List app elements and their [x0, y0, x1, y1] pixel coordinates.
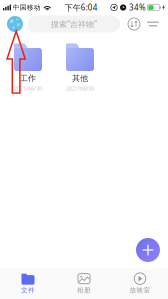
- staticText: 其他: [72, 73, 88, 83]
- staticText: 2021/06/30: [14, 85, 42, 92]
- button[interactable]: 排序: [128, 18, 140, 30]
- staticText: 2021/06/30: [66, 85, 94, 92]
- button[interactable]: 工作: [2, 43, 54, 92]
- staticText: 工作: [20, 73, 36, 83]
- button[interactable]: 放映室: [112, 268, 168, 299]
- staticText: 文件: [21, 286, 35, 294]
- staticText: 搜索“吉祥物”: [51, 19, 97, 29]
- button[interactable]: 文件: [0, 268, 56, 299]
- staticText: 下午6:04: [65, 2, 98, 13]
- staticText: 中国移动: [13, 3, 41, 12]
- button[interactable]: 切换视图: [147, 18, 159, 30]
- staticText: 相册: [77, 286, 91, 294]
- staticText: 34%: [129, 2, 146, 13]
- button[interactable]: 相册: [56, 268, 112, 299]
- button[interactable]: 搜索“吉祥物”: [28, 15, 120, 32]
- button[interactable]: 新建: [136, 238, 160, 262]
- button[interactable]: 其他: [54, 43, 106, 92]
- button[interactable]: 账户: [7, 16, 23, 32]
- staticText: 放映室: [129, 286, 150, 294]
